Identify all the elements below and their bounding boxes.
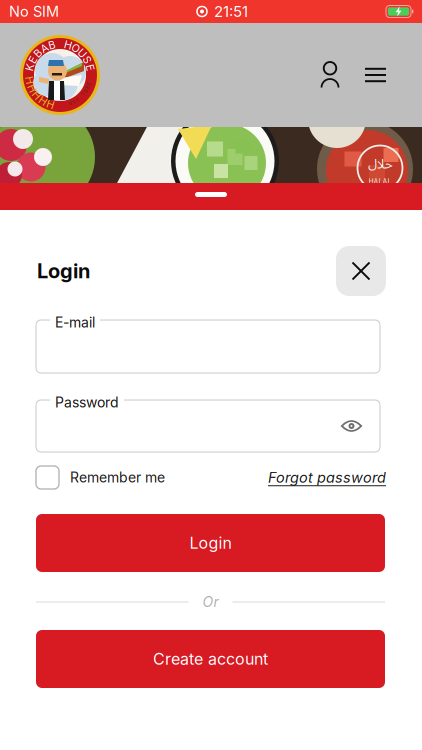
staticText: H (39, 94, 47, 107)
staticText: K (26, 61, 33, 74)
button[interactable]: Account (320, 62, 340, 88)
staticText: Login (37, 259, 90, 283)
staticText: 5 (87, 81, 90, 87)
staticText: 21:51 (214, 2, 248, 20)
staticText: E (87, 61, 93, 74)
staticText: Password (55, 394, 119, 411)
staticText: Forgot password (268, 469, 386, 486)
staticText: No SIM (9, 3, 59, 20)
staticText: 9 (84, 88, 87, 94)
staticText: 1 (82, 91, 84, 98)
staticText: H (46, 98, 54, 111)
staticText: 8 (86, 84, 89, 91)
staticText: H (33, 89, 41, 102)
staticText (58, 37, 61, 50)
staticText: Create account (153, 649, 268, 669)
staticText: H (64, 39, 72, 51)
staticText: حلال (367, 150, 392, 178)
staticText: S (84, 53, 91, 66)
button[interactable]: Forgot password (268, 469, 386, 486)
button[interactable]: Menu (365, 62, 386, 88)
staticText: H (28, 82, 36, 95)
staticText: H (25, 74, 33, 87)
staticText: E-mail (55, 314, 95, 331)
button[interactable]: Remember me (36, 466, 165, 489)
staticText: B (48, 39, 55, 51)
button[interactable]: Show password (332, 410, 371, 442)
staticText: s (72, 98, 75, 105)
staticText: U (78, 47, 86, 60)
staticText: t (76, 96, 78, 103)
staticText: E (30, 53, 36, 66)
staticText: O (72, 42, 80, 55)
staticText: e (69, 100, 72, 106)
staticText: Remember me (70, 469, 165, 486)
button[interactable]: Create account (36, 630, 385, 688)
button[interactable]: Close (336, 246, 386, 296)
staticText: HALAL (368, 177, 391, 186)
staticText: B (34, 47, 41, 60)
staticText: Login (189, 533, 231, 553)
staticText: Or (202, 593, 218, 610)
staticText: A (41, 42, 48, 55)
button[interactable]: Login (36, 514, 385, 572)
